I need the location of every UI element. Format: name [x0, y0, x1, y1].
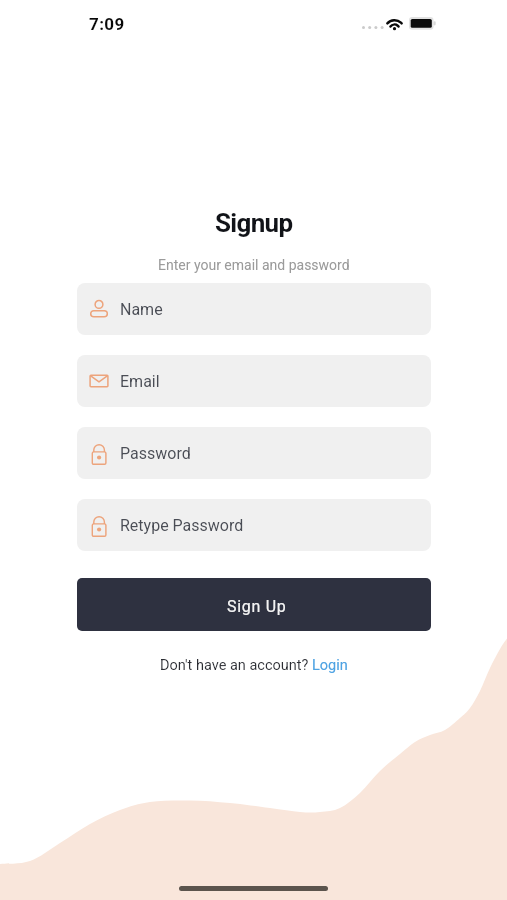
staticText: Email — [120, 372, 160, 391]
button[interactable]: Sign Up — [77, 578, 431, 631]
staticText: Enter your email and password — [158, 257, 350, 273]
button[interactable]: Name — [77, 283, 431, 335]
staticText: Login — [312, 657, 348, 674]
staticText: Name — [120, 300, 163, 319]
staticText: Don't have an account? — [160, 657, 312, 674]
staticText: Retype Password — [120, 516, 244, 535]
button[interactable]: Email — [77, 355, 431, 407]
staticText: Password — [120, 444, 191, 463]
staticText: 7:09 — [89, 14, 125, 34]
button[interactable]: Retype Password — [77, 499, 431, 551]
button[interactable]: Password — [77, 427, 431, 479]
button[interactable]: Login — [312, 657, 348, 674]
staticText: Sign Up — [227, 597, 287, 616]
staticText: Signup — [215, 208, 293, 238]
